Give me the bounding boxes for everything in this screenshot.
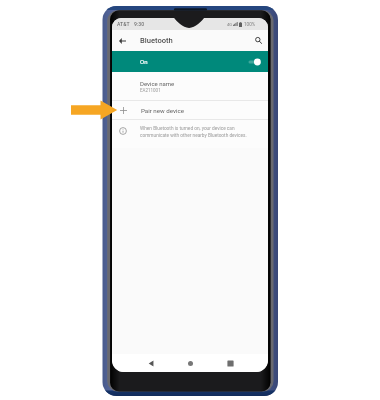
- staticText: EA211001: [140, 88, 161, 93]
- staticText: 9:30: [134, 21, 145, 27]
- button[interactable]: Device name: [112, 72, 268, 100]
- button[interactable]: On: [112, 51, 268, 72]
- staticText: AT&T: [117, 21, 130, 27]
- button[interactable]: Back: [115, 30, 130, 51]
- button[interactable]: Home: [181, 354, 199, 372]
- button[interactable]: Recents: [221, 354, 239, 372]
- staticText: Device name: [140, 80, 175, 87]
- staticText: Pair new device: [141, 107, 185, 114]
- staticText: Bluetooth: [140, 36, 173, 45]
- button[interactable]: Search: [251, 30, 266, 51]
- staticText: 4G: [227, 22, 232, 27]
- button[interactable]: Pair new device: [112, 101, 268, 119]
- button[interactable]: Back: [142, 354, 160, 372]
- staticText: 100%: [244, 22, 256, 27]
- staticText: On: [140, 58, 148, 65]
- staticText: When Bluetooth is turned on, your device…: [140, 126, 252, 138]
